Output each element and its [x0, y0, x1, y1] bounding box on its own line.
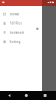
button[interactable]: Home	[19, 91, 34, 100]
staticText: Browse	[10, 12, 20, 16]
staticText: Pdf Files	[10, 21, 22, 25]
button[interactable]: Recent apps	[34, 91, 56, 100]
button[interactable]: Back	[0, 91, 19, 100]
button[interactable]: Browse	[0, 10, 42, 19]
staticText: Setting	[10, 40, 21, 44]
staticText: Bookmark	[10, 31, 24, 34]
button[interactable]: Setting	[0, 37, 42, 46]
button[interactable]: Pdf Files	[0, 19, 42, 28]
button[interactable]: Bookmark	[0, 28, 42, 37]
